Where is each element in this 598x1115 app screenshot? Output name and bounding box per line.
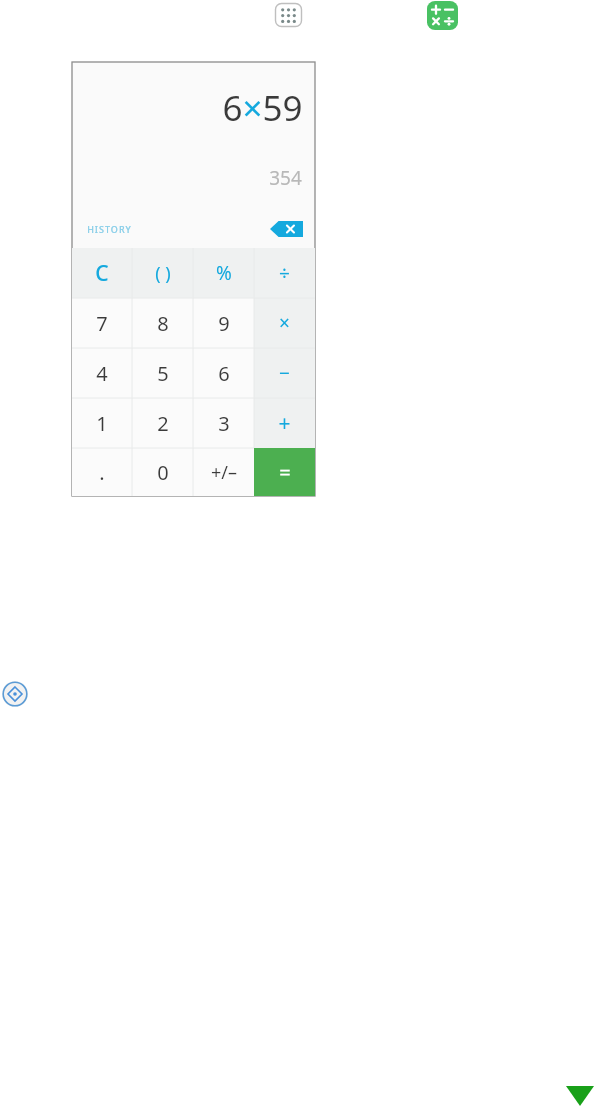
staticText: C [95,259,109,288]
staticText: 6 [218,360,230,387]
button[interactable]: All apps [274,2,303,28]
staticText: = [279,459,291,486]
button[interactable]: . [72,448,132,496]
staticText: 4 [96,360,108,387]
staticText: HISTORY [87,223,132,235]
button[interactable]: +/– [193,448,254,496]
staticText: 7 [96,310,108,337]
button[interactable]: HISTORY [87,223,132,235]
button[interactable]: 1 [72,398,132,448]
button[interactable]: − [254,348,315,398]
button[interactable]: Calculator app [427,1,458,30]
button[interactable]: ( ) [132,248,193,298]
button[interactable]: 4 [72,348,132,398]
button[interactable]: 9 [193,298,254,348]
button[interactable]: 7 [72,298,132,348]
staticText: . [99,459,105,486]
staticText: 354 [269,165,302,191]
button[interactable]: 2 [132,398,193,448]
button[interactable]: % [193,248,254,298]
staticText: 8 [157,310,169,337]
staticText: − [279,360,290,386]
staticText: 1 [96,410,108,437]
staticText: 3 [218,410,230,437]
staticText: + [278,409,291,438]
button[interactable]: 8 [132,298,193,348]
staticText: ( ) [155,261,171,286]
button[interactable]: Backspace [270,221,303,237]
button[interactable]: 3 [193,398,254,448]
staticText: 9 [218,310,230,337]
button[interactable]: 0 [132,448,193,496]
staticText: % [216,260,232,286]
button[interactable]: × [254,298,315,348]
staticText: × [279,310,290,336]
staticText: 6×59 [222,84,303,132]
staticText: ÷ [279,260,290,286]
button[interactable]: 5 [132,348,193,398]
button[interactable]: 6 [193,348,254,398]
staticText: +/– [211,460,237,485]
staticText: 5 [157,360,169,387]
button[interactable]: + [254,398,315,448]
staticText: 2 [157,410,169,437]
button[interactable]: C [72,248,132,298]
button[interactable]: = [254,448,315,496]
button[interactable]: NFC [2,681,28,707]
button[interactable]: Scroll down [566,1086,594,1106]
staticText: 0 [157,459,169,486]
button[interactable]: ÷ [254,248,315,298]
